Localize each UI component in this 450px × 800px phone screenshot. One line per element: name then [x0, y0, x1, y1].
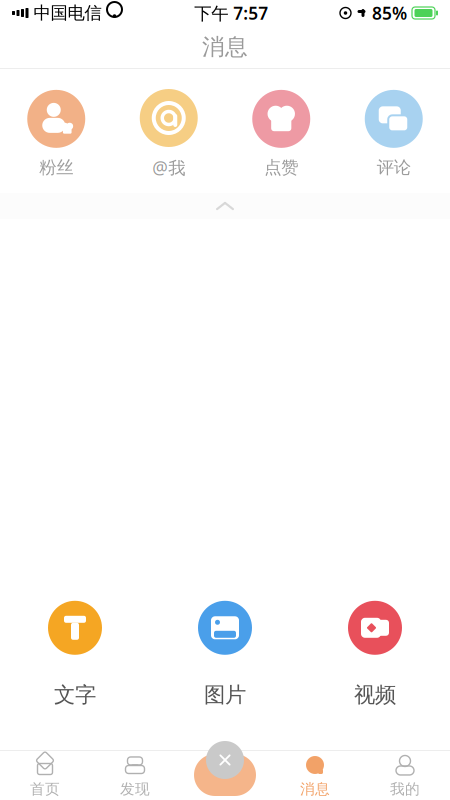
button[interactable]: @我	[112, 87, 225, 181]
staticText: 图片	[204, 682, 246, 708]
button[interactable]: 发现	[90, 751, 180, 800]
button[interactable]: 文字	[0, 590, 150, 708]
button[interactable]: 我的	[360, 751, 450, 800]
staticText: 发现	[120, 780, 150, 798]
staticText: 粉丝	[39, 157, 73, 178]
staticText: 消息	[300, 780, 330, 798]
staticText: 下午 7:57	[194, 1, 268, 24]
staticText: 中国电信	[33, 2, 101, 24]
staticText: 85%	[372, 1, 407, 24]
staticText: 文字	[54, 682, 96, 708]
button[interactable]: 首页	[0, 751, 90, 800]
button[interactable]: 粉丝	[0, 88, 112, 180]
staticText: 评论	[377, 157, 411, 178]
staticText: 点赞	[264, 157, 298, 178]
staticText: 我的	[390, 780, 420, 798]
button[interactable]: 视频	[300, 590, 450, 708]
button[interactable]: 点赞	[225, 88, 337, 180]
button[interactable]: 图片	[150, 590, 300, 708]
button[interactable]: 评论	[337, 88, 450, 180]
button[interactable]: 关闭	[190, 737, 260, 799]
staticText: 消息	[202, 33, 248, 61]
staticText: 视频	[354, 682, 396, 708]
button[interactable]: 消息	[270, 751, 360, 800]
staticText: 首页	[30, 780, 60, 798]
staticText: @我	[152, 156, 185, 179]
